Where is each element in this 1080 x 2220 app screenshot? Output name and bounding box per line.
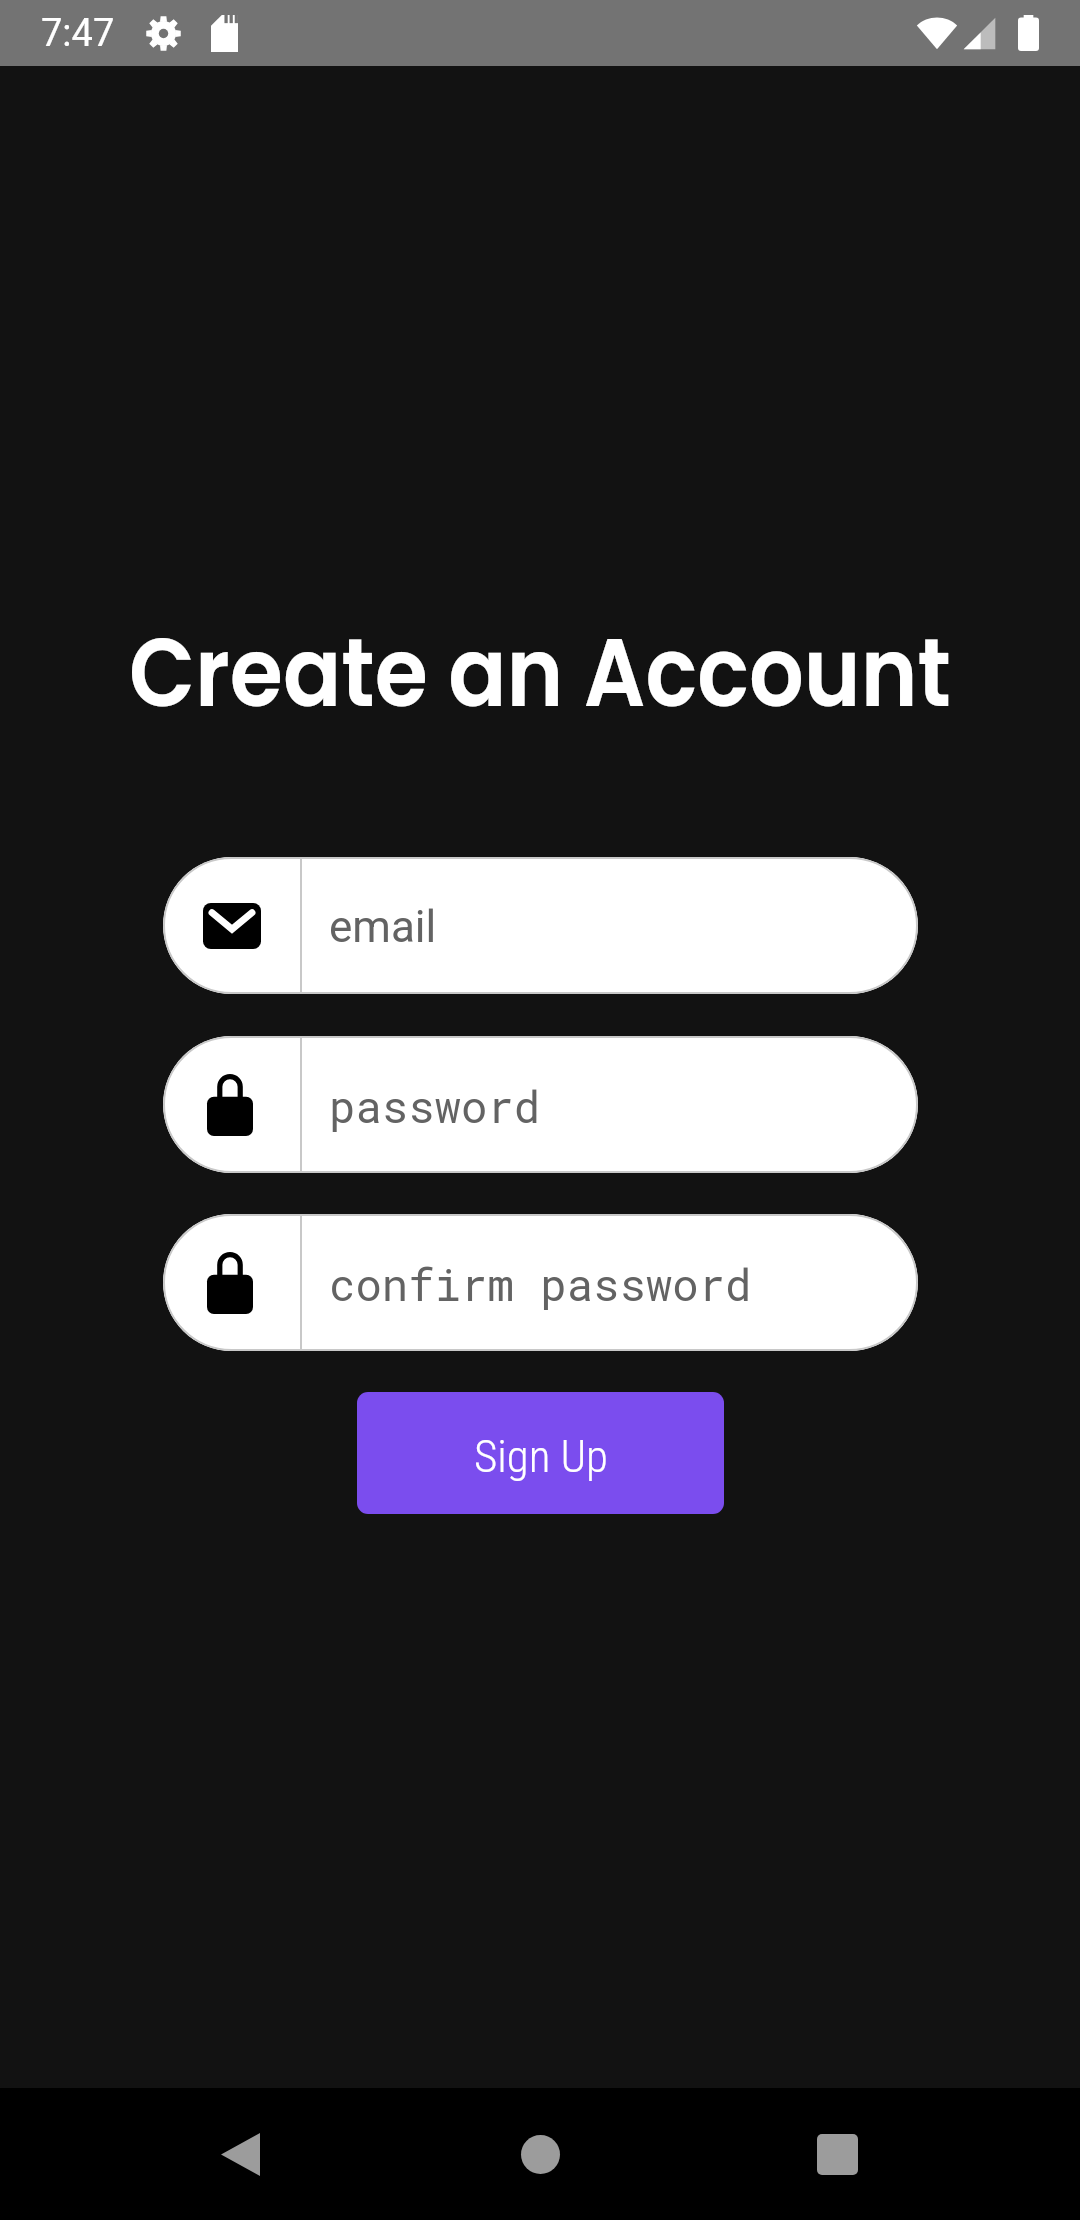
button[interactable]: confirm password — [163, 1214, 918, 1351]
button[interactable]: Sign Up — [357, 1392, 724, 1514]
staticText: Sign Up — [474, 1430, 608, 1483]
staticText: email — [329, 901, 437, 953]
button[interactable]: Home — [480, 2088, 600, 2220]
button[interactable]: Recent apps — [777, 2088, 897, 2220]
button[interactable]: password — [163, 1036, 918, 1173]
button[interactable]: Back — [180, 2088, 300, 2220]
staticText: 7:47 — [41, 11, 115, 56]
staticText: confirm password — [329, 1255, 752, 1313]
button[interactable]: email — [163, 857, 918, 994]
staticText: Create an Account — [129, 605, 951, 740]
staticText: password — [329, 1077, 541, 1135]
